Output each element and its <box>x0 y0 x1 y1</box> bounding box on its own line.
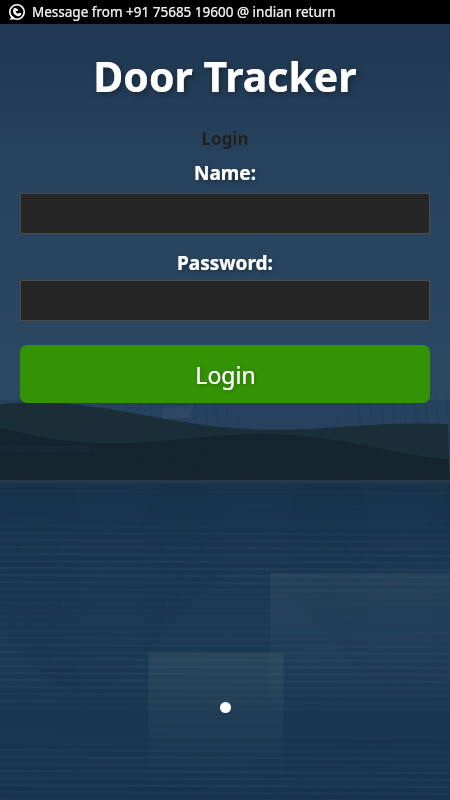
staticText: Message from +91 75685 19600 @ indian re… <box>32 3 336 21</box>
staticText: Name: <box>0 160 450 186</box>
button[interactable]: Login <box>20 345 430 403</box>
staticText: Door Tracker <box>0 48 450 104</box>
staticText: Login <box>0 127 450 150</box>
staticText: Password: <box>0 250 450 276</box>
staticText: Login <box>195 359 256 390</box>
other: WhatsApp notification <box>8 3 26 21</box>
